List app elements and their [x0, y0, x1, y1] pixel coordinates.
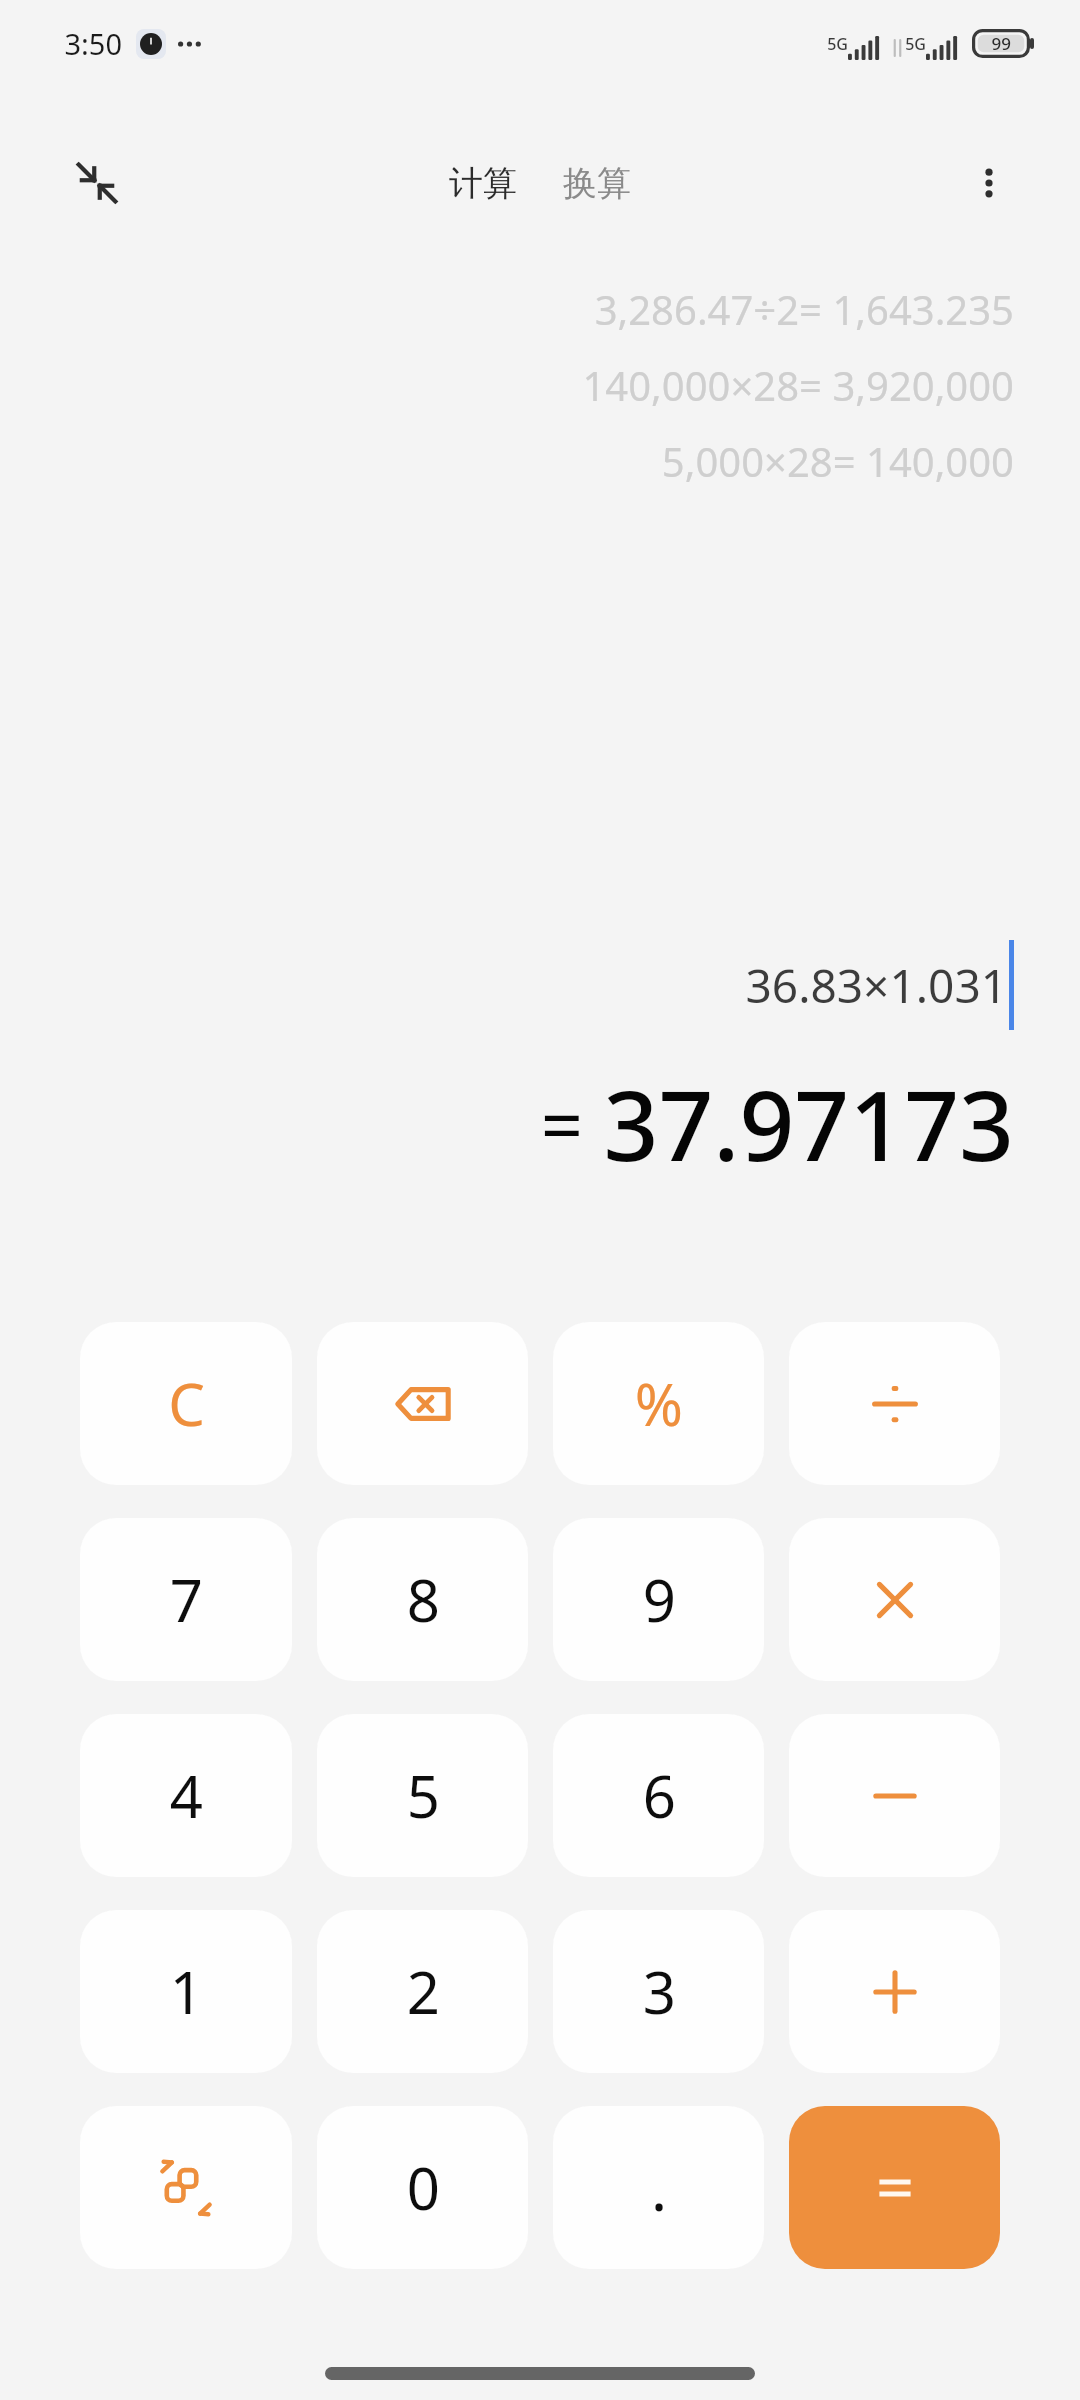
button[interactable]: 3	[553, 1910, 764, 2073]
button[interactable]: 计算	[439, 154, 527, 213]
button[interactable]: 7	[80, 1518, 292, 1681]
staticText: 5	[406, 1756, 440, 1835]
button[interactable]: 8	[317, 1518, 528, 1681]
staticText: 36.83×1.031	[745, 954, 1007, 1017]
button[interactable]: Collapse	[62, 148, 132, 218]
button[interactable]: 6	[553, 1714, 764, 1877]
staticText: .	[650, 2147, 667, 2229]
staticText: 1	[169, 1952, 203, 2031]
staticText: 7	[169, 1560, 203, 1639]
button[interactable]: 0	[317, 2106, 528, 2269]
button[interactable]: Subtract	[789, 1714, 1000, 1877]
button[interactable]: 5,000×28= 140,000	[661, 434, 1014, 488]
button[interactable]: More options	[954, 148, 1024, 218]
staticText: =	[540, 1073, 583, 1174]
button[interactable]: Multiply	[789, 1518, 1000, 1681]
staticText: 5G	[827, 33, 848, 55]
staticText: 9	[642, 1560, 676, 1639]
staticText: 99	[991, 32, 1011, 55]
button[interactable]: 1	[80, 1910, 292, 2073]
staticText: 140,000×28= 3,920,000	[582, 358, 1014, 412]
staticText: 2	[406, 1952, 440, 2031]
button[interactable]: 9	[553, 1518, 764, 1681]
staticText: 5G	[905, 33, 926, 55]
button[interactable]: 3,286.47÷2= 1,643.235	[594, 282, 1014, 336]
button[interactable]: 140,000×28= 3,920,000	[582, 358, 1014, 412]
staticText: 37.97173	[603, 1058, 1014, 1189]
button[interactable]: Convert	[80, 2106, 292, 2269]
button[interactable]: 2	[317, 1910, 528, 2073]
staticText: 6	[642, 1756, 676, 1835]
staticText: 换算	[563, 162, 631, 205]
staticText: 0	[406, 2148, 440, 2227]
staticText: 计算	[449, 162, 517, 205]
button[interactable]: Backspace	[317, 1322, 528, 1485]
staticText: C	[168, 1364, 205, 1443]
staticText: %	[634, 1364, 683, 1443]
button[interactable]: 换算	[553, 154, 641, 213]
button[interactable]: 5	[317, 1714, 528, 1877]
button[interactable]: Divide	[789, 1322, 1000, 1485]
staticText: 3,286.47÷2= 1,643.235	[594, 282, 1014, 336]
staticText: 4	[169, 1756, 203, 1835]
staticText: 3	[642, 1952, 676, 2031]
button[interactable]: %	[553, 1322, 764, 1485]
button[interactable]: Equals	[789, 2106, 1000, 2269]
button[interactable]: .	[553, 2106, 764, 2269]
staticText: 8	[406, 1560, 440, 1639]
staticText: 3:50	[64, 24, 122, 63]
button[interactable]: C	[80, 1322, 292, 1485]
button[interactable]: Add	[789, 1910, 1000, 2073]
button[interactable]: 4	[80, 1714, 292, 1877]
staticText: 5,000×28= 140,000	[661, 434, 1014, 488]
